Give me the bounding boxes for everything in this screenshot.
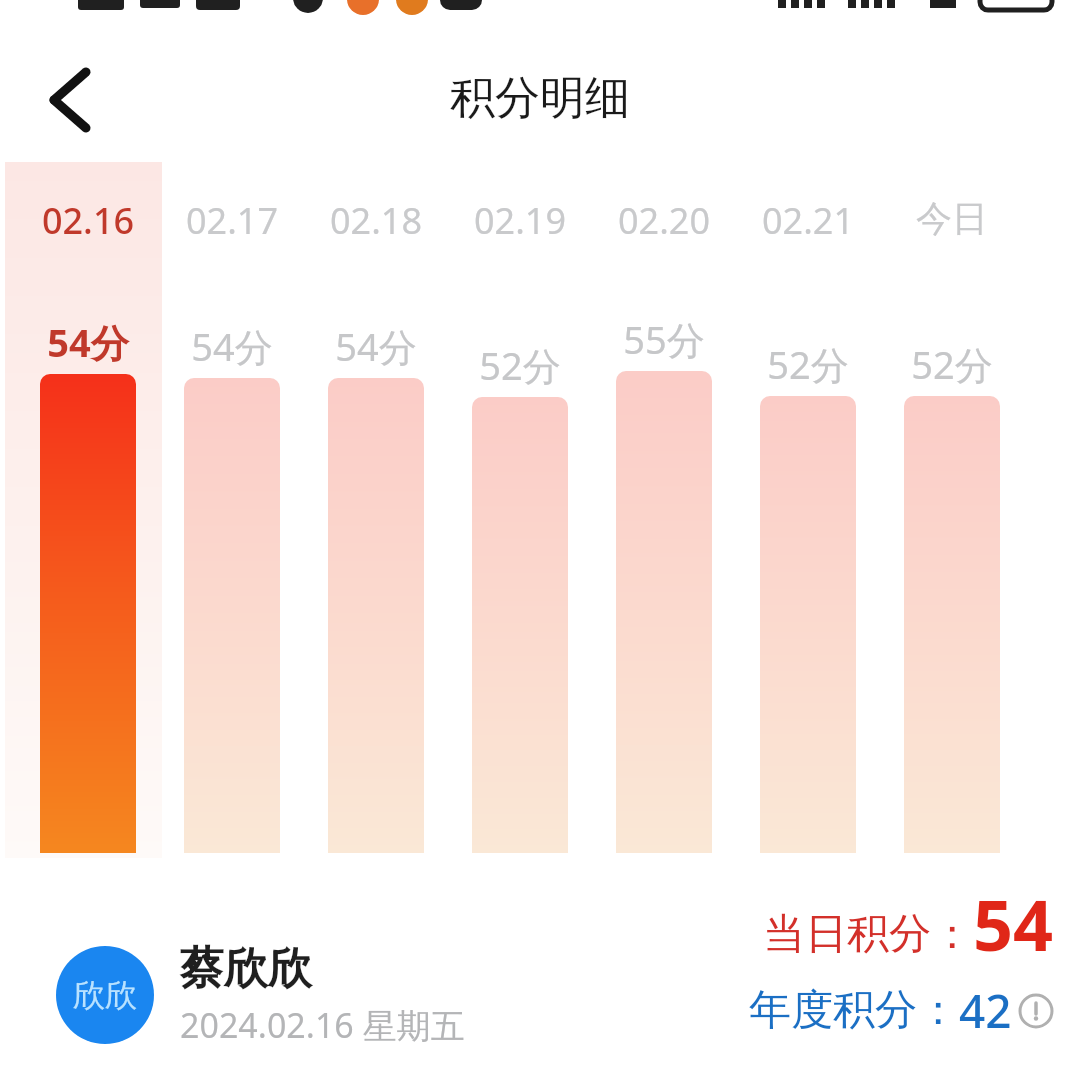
staticText: 02.20 [592,196,736,245]
staticText: 52分 [736,338,880,390]
button[interactable] [304,162,448,853]
staticText: 52分 [448,339,592,391]
staticText: 02.19 [448,196,592,245]
button[interactable]: Back [14,50,114,150]
staticText: 54分 [304,320,448,372]
staticText: 02.21 [736,196,880,245]
staticText: 积分明细 [0,70,1080,127]
staticText: 52分 [880,338,1024,390]
staticText: 2024.02.16 星期五 [180,1002,465,1048]
staticText: 55分 [592,313,736,365]
button[interactable] [592,162,736,853]
button[interactable] [880,162,1024,853]
staticText: 年度积分： [749,984,959,1037]
button[interactable] [448,162,592,853]
staticText: 今日 [880,196,1024,241]
staticText: 02.17 [160,196,304,245]
other: Info [1018,993,1054,1029]
staticText: 54分 [16,316,160,368]
staticText: 42 [959,979,1012,1042]
button[interactable] [16,162,160,853]
staticText: 当日积分： [763,908,973,961]
staticText: 54 [973,876,1054,971]
staticText: 蔡欣欣 [180,941,312,996]
staticText: 欣欣 [73,975,137,1015]
staticText: 02.16 [16,196,160,245]
button[interactable] [160,162,304,853]
button[interactable]: 年度积分： [749,979,1054,1042]
button[interactable]: 欣欣 [56,941,465,1048]
staticText: 54分 [160,320,304,372]
button[interactable] [736,162,880,853]
staticText: 02.18 [304,196,448,245]
